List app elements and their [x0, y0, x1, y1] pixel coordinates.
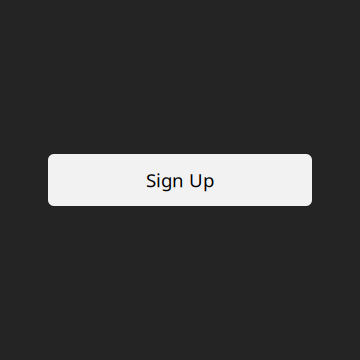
button[interactable]: Sign Up	[48, 154, 312, 206]
staticText: Sign Up	[146, 168, 214, 192]
